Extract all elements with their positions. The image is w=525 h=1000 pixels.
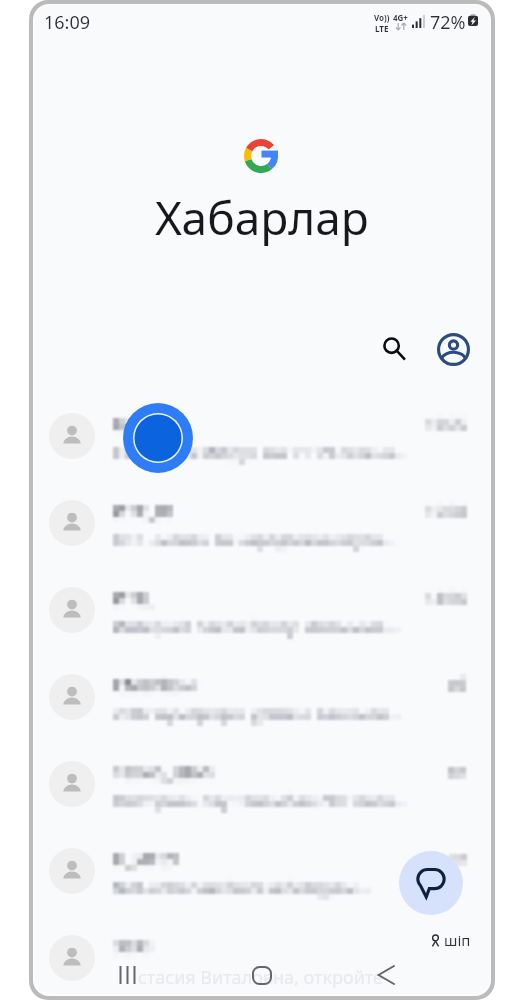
button[interactable]: Recent apps (109, 957, 145, 993)
staticText: 72% (430, 10, 466, 35)
staticText: 2007 нұмері іріи ұрімені вашімен... (113, 702, 402, 725)
staticText: 16:05 (425, 413, 466, 435)
button[interactable]: Account (430, 326, 476, 372)
staticText: 14:36 (425, 587, 466, 609)
staticText: LTE (375, 23, 389, 34)
button[interactable]: Н_ИТЕУ (34, 827, 490, 914)
button[interactable]: Техно_Шоп (34, 740, 490, 827)
staticText: Сәлем, сіз Mitipyli мА 91 99.6геенн... (113, 441, 410, 464)
staticText: чт (449, 848, 466, 870)
button[interactable]: СМаhbsні (34, 653, 490, 740)
staticText: Платіржан тау Тенамбаш 90Нааан... (113, 789, 409, 812)
staticText: пт (448, 761, 466, 783)
staticText: ИТЦ (113, 586, 151, 611)
staticText: Vo)) (374, 12, 390, 23)
staticText: Ualai (113, 412, 157, 437)
staticText: КЗТ - менен то нарадзейка кеуан... (113, 528, 397, 551)
button[interactable]: Start chat (399, 851, 463, 915)
staticText: Н_ИТЕУ (113, 847, 180, 872)
staticText: 15:58 (425, 500, 466, 522)
staticText: 4G+ (393, 12, 408, 23)
button[interactable]: Back (368, 957, 404, 993)
button[interactable]: ЗЕЮ (34, 914, 490, 994)
staticText: сб (448, 674, 466, 696)
button[interactable]: Home (244, 957, 280, 993)
button[interactable]: ИТЦ (34, 566, 490, 653)
staticText: стасия Виталовна, откройте (138, 965, 383, 990)
staticText: №П-ноһаһай бшсі кебетіруем... (113, 876, 370, 899)
button[interactable]: Search (371, 326, 417, 372)
button[interactable]: Ualai (34, 392, 490, 479)
staticText: Техно_Шоп (113, 760, 213, 785)
staticText: Интернет пакла біліпуі Әлеммме... (113, 615, 399, 638)
staticText: ЗЕЮ (113, 934, 152, 959)
staticText: ИТС_Ю (113, 499, 174, 524)
staticText: Хабарлар (155, 186, 369, 249)
staticText: СМаhbsні (113, 673, 199, 698)
staticText: шіп (444, 930, 471, 950)
staticText: 16:09 (44, 10, 91, 35)
button[interactable]: ИТС_Ю (34, 479, 490, 566)
